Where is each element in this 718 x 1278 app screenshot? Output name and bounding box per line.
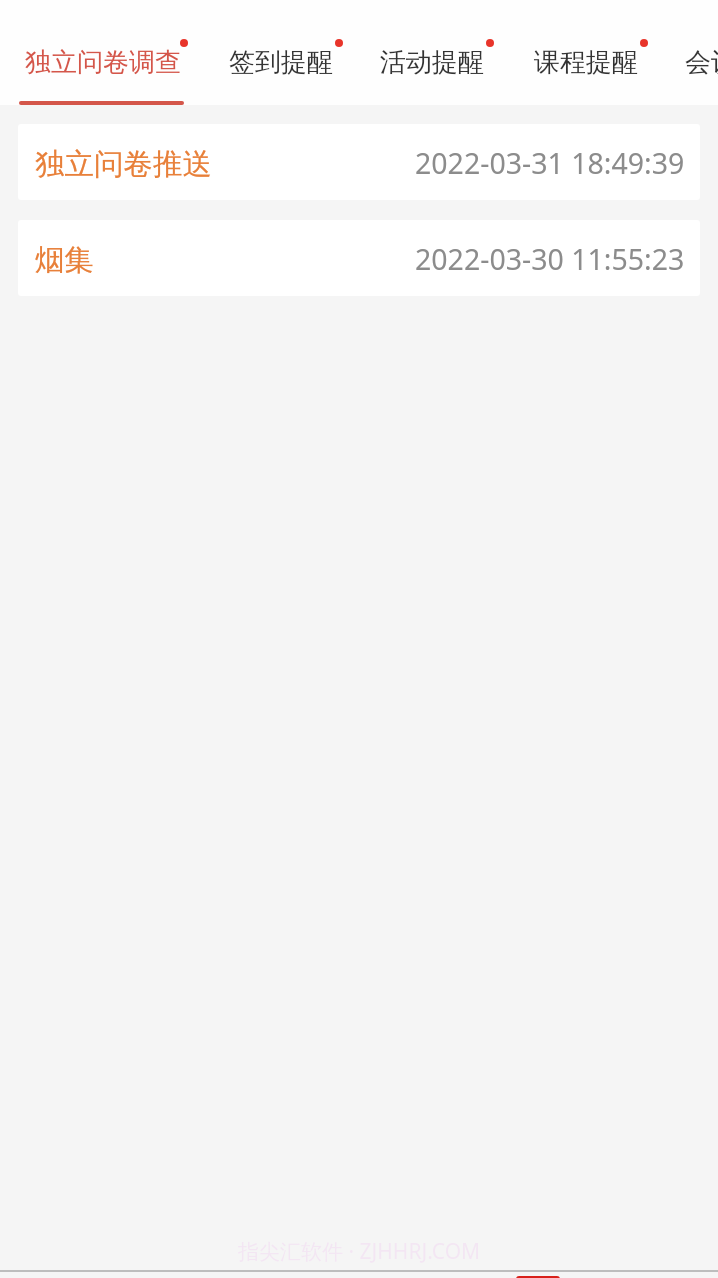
staticText: 课程提醒 [534, 46, 633, 79]
button[interactable]: 烟集 [18, 220, 700, 296]
button[interactable]: 签到提醒 [201, 0, 354, 105]
staticText: 2022-03-31 18:49:39 [415, 144, 685, 183]
button[interactable]: 会议 [659, 0, 718, 105]
staticText: 指尖汇软件 · ZJHHRJ.COM [238, 1237, 481, 1266]
staticText: 活动提醒 [380, 46, 479, 79]
button[interactable]: 活动提醒 [354, 0, 506, 105]
staticText: 独立问卷调查 [25, 46, 173, 79]
staticText: 2022-03-30 11:55:23 [415, 240, 685, 279]
staticText: 烟集 [35, 242, 94, 279]
button[interactable]: 课程提醒 [506, 0, 659, 105]
button[interactable]: 独立问卷调查 [0, 0, 201, 105]
staticText: 签到提醒 [229, 46, 328, 79]
button[interactable]: 独立问卷推送 [18, 124, 700, 200]
staticText: 独立问卷推送 [35, 146, 212, 183]
staticText: 会议 [685, 46, 718, 79]
